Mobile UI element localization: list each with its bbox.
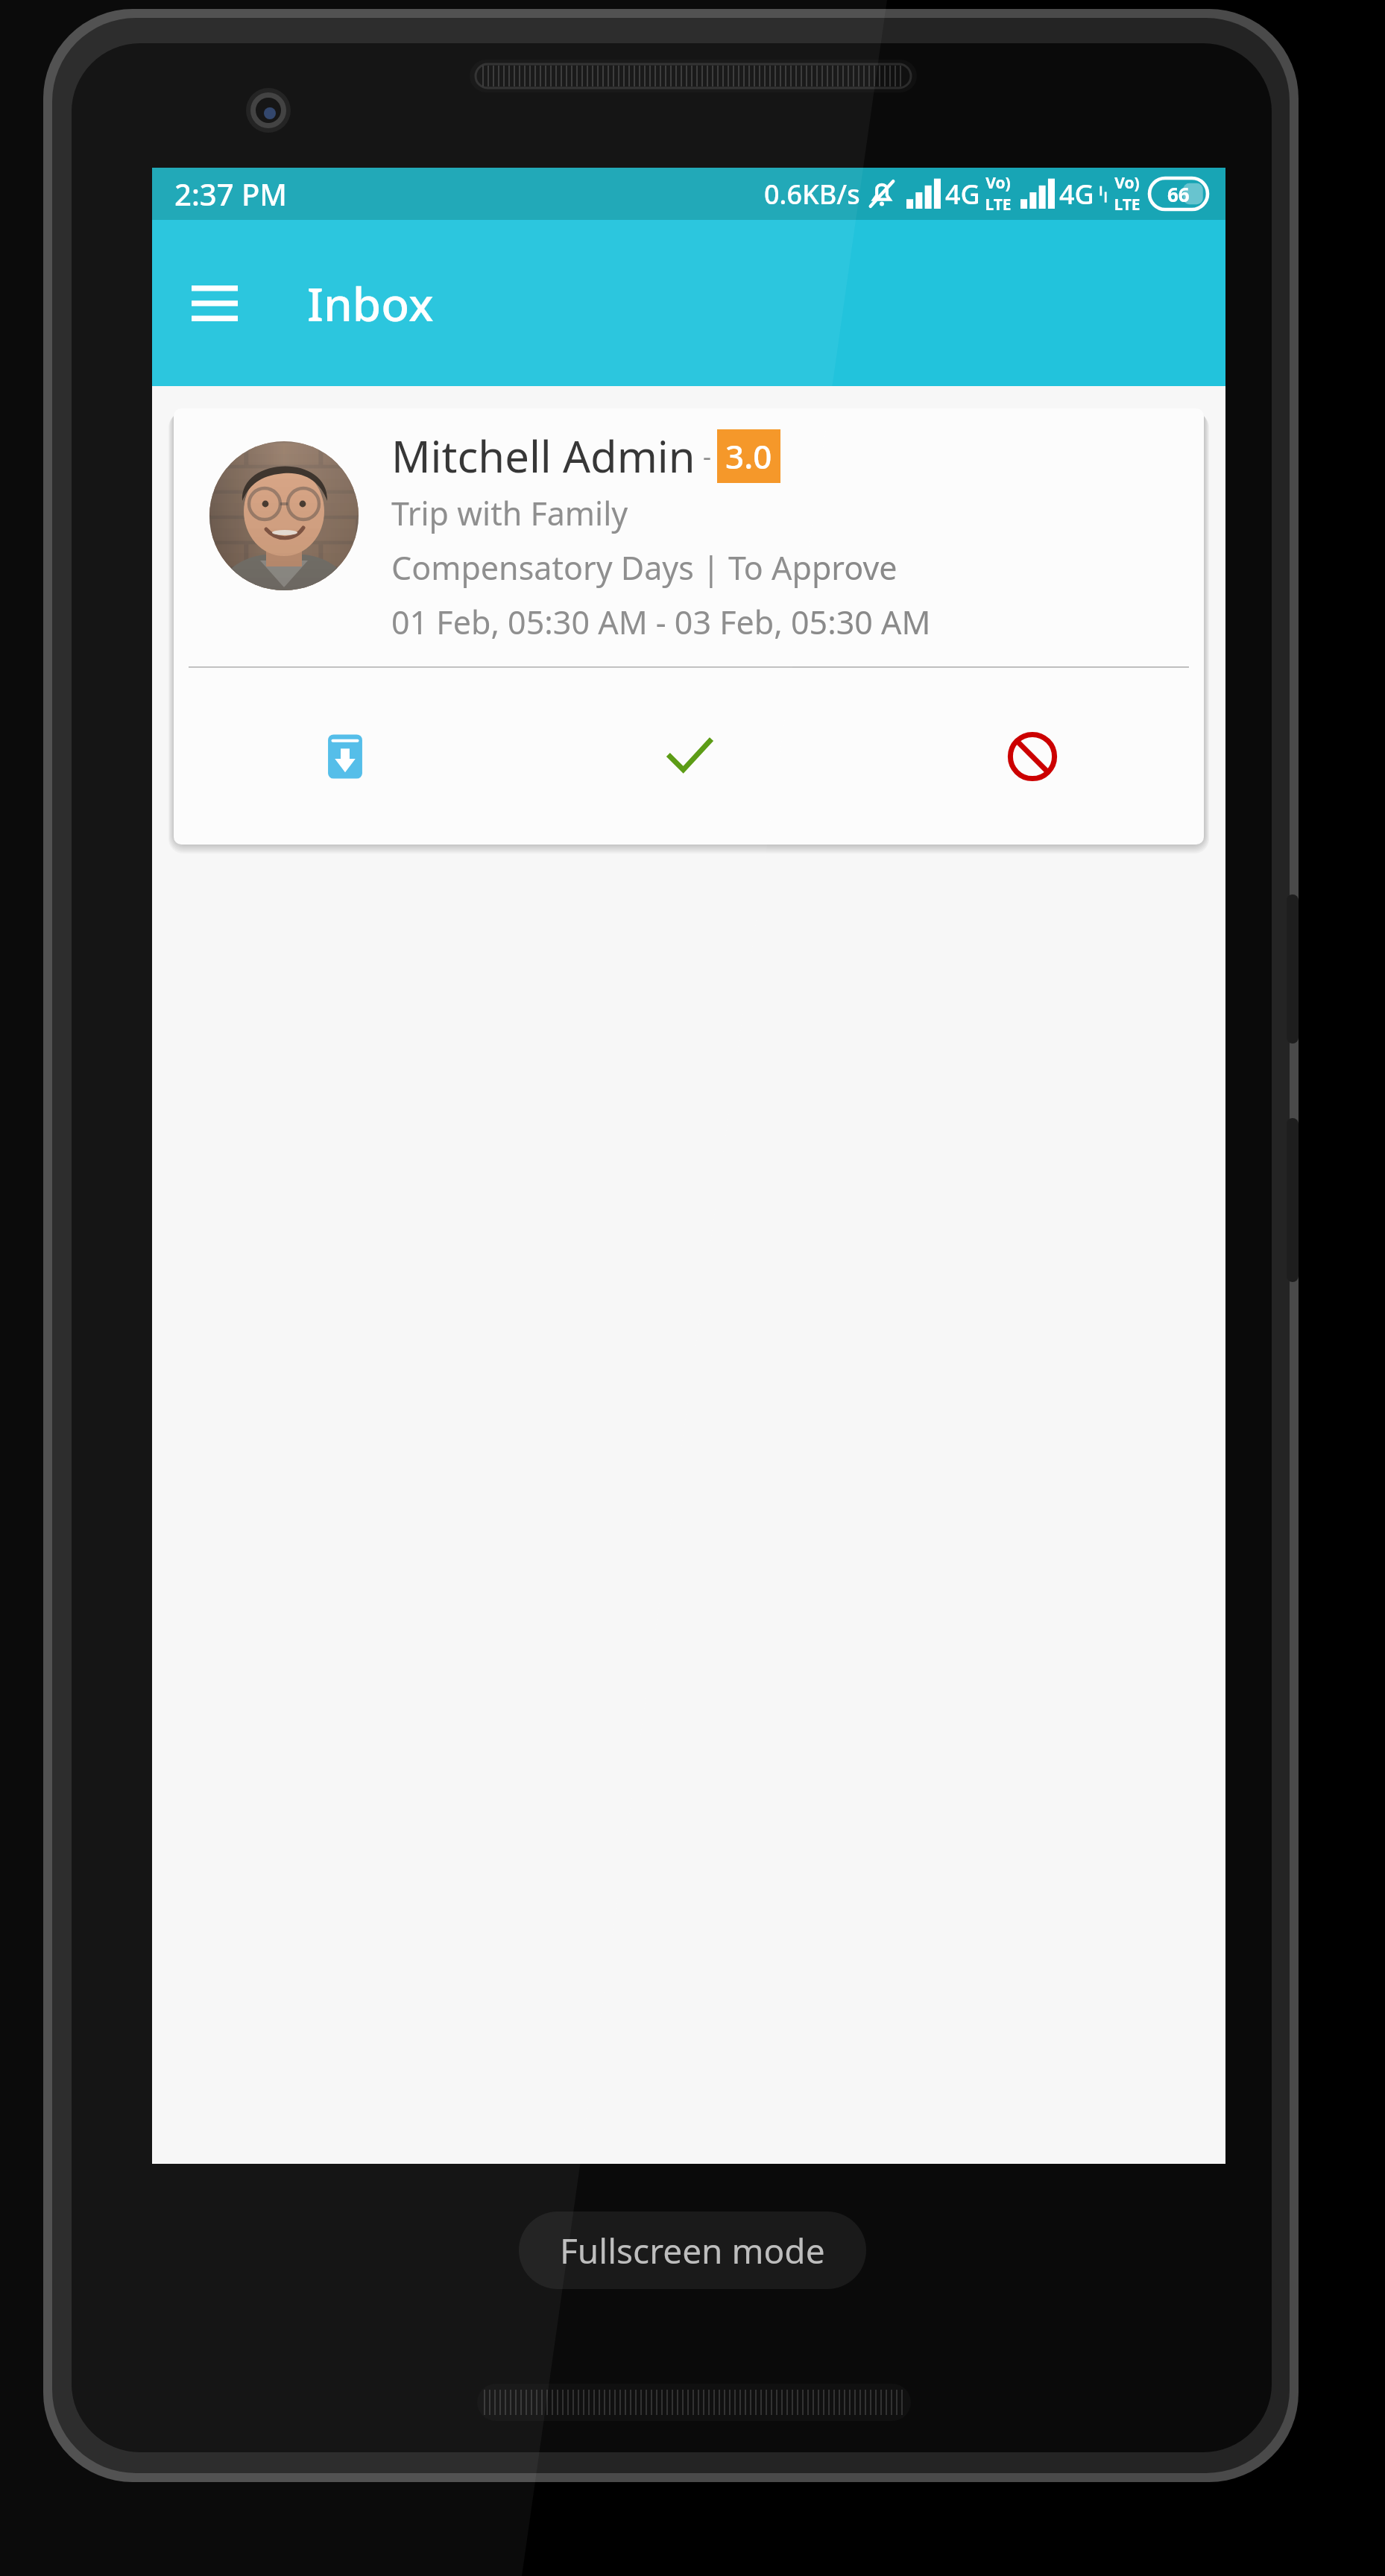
staticText: 0.6KB/s bbox=[764, 176, 860, 212]
staticText: Vo) bbox=[985, 172, 1011, 194]
button[interactable]: Fullscreen mode bbox=[519, 2212, 866, 2289]
staticText: 4G bbox=[1059, 176, 1094, 212]
staticText: Mitchell Admin bbox=[391, 426, 695, 485]
staticText: Vo) bbox=[1114, 172, 1140, 194]
staticText: 2:37 PM bbox=[174, 174, 288, 214]
button[interactable]: Download attachment bbox=[174, 668, 517, 845]
staticText: 3.0 bbox=[725, 434, 772, 479]
button[interactable]: Open navigation menu bbox=[177, 266, 252, 341]
staticText: LTE bbox=[1114, 194, 1141, 215]
staticText: - bbox=[703, 439, 711, 473]
staticText: 4G bbox=[945, 176, 980, 212]
staticText: Inbox bbox=[307, 272, 434, 335]
staticText: Fullscreen mode bbox=[560, 2227, 825, 2274]
button[interactable]: Mitchell Admin bbox=[174, 408, 1204, 845]
staticText: 66 bbox=[1167, 181, 1190, 207]
staticText: Trip with Family bbox=[391, 491, 628, 535]
staticText: 01 Feb, 05:30 AM - 03 Feb, 05:30 AM bbox=[391, 600, 931, 644]
staticText: LTE bbox=[985, 194, 1012, 215]
button[interactable]: Approve bbox=[517, 668, 860, 845]
button[interactable]: Refuse bbox=[860, 668, 1204, 845]
staticText: Compensatory Days | To Approve bbox=[391, 546, 897, 590]
